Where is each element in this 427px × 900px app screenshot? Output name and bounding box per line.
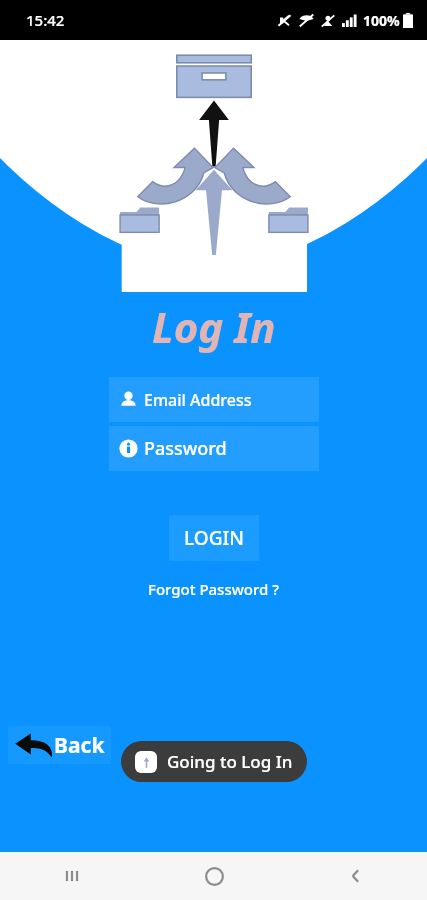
staticText: LOGIN: [184, 525, 244, 551]
button[interactable]: Recent apps: [0, 852, 143, 900]
button[interactable]: Back: [8, 726, 111, 764]
button[interactable]: LOGIN: [169, 515, 259, 561]
staticText: Password: [144, 436, 227, 461]
staticText: Forgot Password ?: [148, 579, 279, 599]
staticText: 100%: [363, 11, 400, 30]
button[interactable]: Home: [143, 852, 285, 900]
staticText: 15:42: [26, 10, 65, 30]
button[interactable]: Back: [285, 852, 427, 900]
staticText: Going to Log In: [167, 750, 293, 773]
staticText: Email Address: [144, 389, 252, 411]
button[interactable]: Forgot Password ?: [138, 575, 289, 603]
button[interactable]: Password: [109, 426, 319, 471]
staticText: Log In: [152, 298, 276, 355]
staticText: Back: [54, 731, 105, 760]
button[interactable]: Email Address: [109, 377, 319, 422]
